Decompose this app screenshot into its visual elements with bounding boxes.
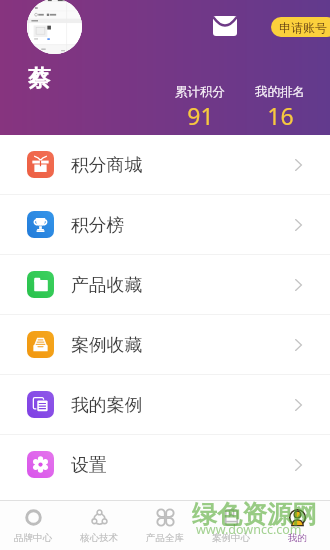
staticText: 案例收藏 <box>71 334 143 356</box>
staticText: 我的 <box>288 532 307 544</box>
button[interactable]: 核心技术 <box>66 501 132 550</box>
button[interactable]: 设置 <box>0 435 330 494</box>
staticText: 累计积分 <box>175 84 225 100</box>
button[interactable]: 积分商城 <box>0 135 330 194</box>
button[interactable]: 积分榜 <box>0 195 330 254</box>
button[interactable]: 案例收藏 <box>0 315 330 374</box>
staticText: 积分榜 <box>71 214 125 236</box>
staticText: 蔡 <box>28 64 51 92</box>
staticText: 品牌中心 <box>14 532 52 544</box>
staticText: 16 <box>267 100 294 131</box>
staticText: 申请账号 <box>279 20 327 35</box>
button[interactable]: 品牌中心 <box>0 501 66 550</box>
button[interactable]: 我的案例 <box>0 375 330 434</box>
staticText: 我的案例 <box>71 394 143 416</box>
staticText: 设置 <box>71 454 107 476</box>
button[interactable]: 申请账号 <box>271 17 330 37</box>
button[interactable]: 产品全库 <box>132 501 198 550</box>
button[interactable]: 累计积分 <box>165 84 235 131</box>
staticText: 案例中心 <box>212 532 250 544</box>
button[interactable]: 案例中心 <box>198 501 264 550</box>
button[interactable]: 我的排名 <box>245 84 315 131</box>
staticText: 核心技术 <box>80 532 118 544</box>
button[interactable]: 我的 <box>264 501 330 550</box>
staticText: 绿色资源网 <box>192 499 317 530</box>
staticText: 产品全库 <box>146 532 184 544</box>
button[interactable]: 产品收藏 <box>0 255 330 314</box>
staticText: 91 <box>187 100 214 131</box>
staticText: 我的排名 <box>255 84 305 100</box>
staticText: www.downcc.com <box>196 521 302 538</box>
staticText: 产品收藏 <box>71 274 143 296</box>
button[interactable]: Avatar <box>27 0 82 54</box>
staticText: 积分商城 <box>71 154 143 176</box>
button[interactable]: Messages <box>207 11 243 41</box>
